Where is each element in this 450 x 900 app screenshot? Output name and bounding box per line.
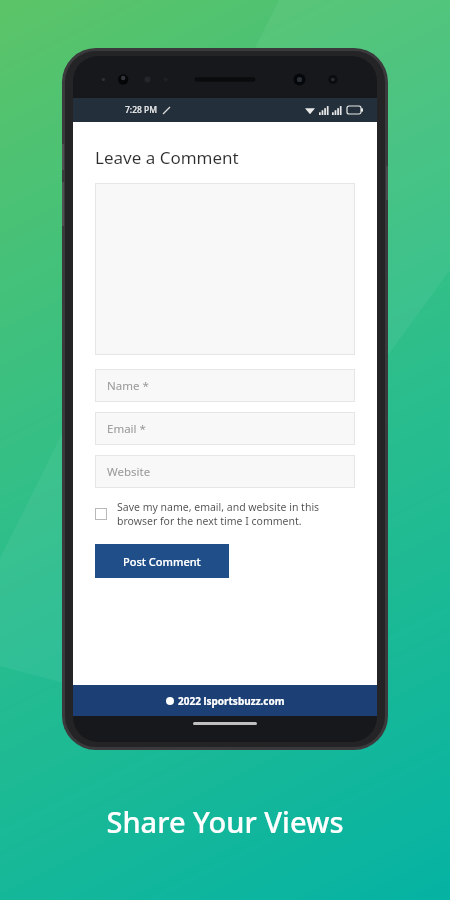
staticText: 7:28 PM [125, 104, 158, 116]
button[interactable]: Save my name, email, and website in this… [95, 500, 355, 528]
staticText: Share Your Views [106, 802, 344, 841]
button[interactable]: Website [95, 455, 355, 488]
staticText: Name * [107, 378, 149, 394]
staticText: Website [107, 464, 151, 480]
button[interactable]: Name * [95, 369, 355, 402]
button[interactable]: Email * [95, 412, 355, 445]
staticText: Save my name, email, and website in this… [117, 500, 355, 528]
button[interactable]: Post Comment [95, 544, 229, 578]
staticText: Email * [107, 421, 146, 437]
staticText: Post Comment [123, 554, 201, 569]
staticText: Leave a Comment [95, 146, 239, 169]
staticText: 2022 lsportsbuzz.com [178, 694, 285, 708]
